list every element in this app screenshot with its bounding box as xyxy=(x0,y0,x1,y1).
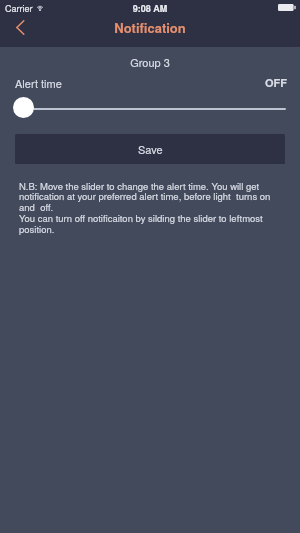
staticText: Alert time xyxy=(15,75,62,91)
staticText: OFF xyxy=(265,75,287,91)
staticText: N.B: Move the slider to change the alert… xyxy=(19,179,286,236)
staticText: Notification xyxy=(0,18,300,37)
button[interactable]: Back xyxy=(5,16,35,39)
button[interactable]: Alert time slider xyxy=(13,97,34,118)
staticText: 9:08 AM xyxy=(0,2,300,15)
staticText: Carrier xyxy=(5,2,33,15)
staticText: Group 3 xyxy=(0,54,300,70)
button[interactable]: Save xyxy=(15,134,285,164)
staticText: Save xyxy=(138,141,163,157)
